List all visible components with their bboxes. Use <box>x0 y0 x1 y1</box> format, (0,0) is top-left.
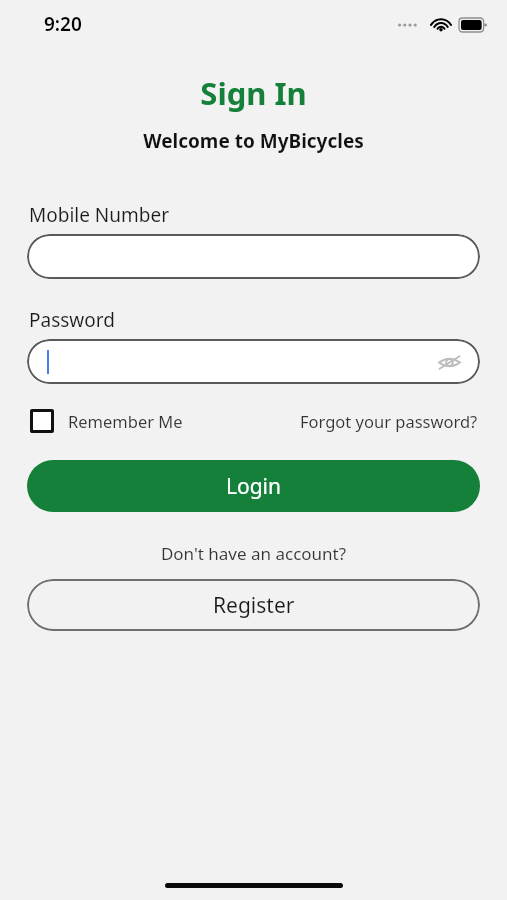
button[interactable] <box>27 234 480 279</box>
staticText: Sign In <box>0 72 507 114</box>
button[interactable]: Login <box>27 460 480 512</box>
staticText: Welcome to MyBicycles <box>0 128 507 154</box>
button[interactable]: Toggle password visibility <box>432 345 466 379</box>
staticText: Remember Me <box>68 410 183 432</box>
staticText: Mobile Number <box>29 202 170 228</box>
staticText: Register <box>213 591 295 620</box>
button[interactable]: Remember Me <box>27 409 183 433</box>
button[interactable]: Toggle password visibility <box>27 339 480 384</box>
staticText: Don't have an account? <box>27 542 480 565</box>
staticText: Forgot your password? <box>300 410 478 432</box>
staticText: 9:20 <box>44 11 82 37</box>
button[interactable]: Forgot your password? <box>298 406 480 436</box>
staticText: Password <box>29 307 115 333</box>
staticText: Login <box>226 472 282 501</box>
button[interactable]: Register <box>27 579 480 631</box>
